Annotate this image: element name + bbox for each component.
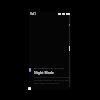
staticText: with fewer distractions. bbox=[34, 81, 61, 84]
staticText: A quiet dark theme for evening bbox=[34, 75, 69, 78]
staticText: reading sessions and focus work bbox=[34, 78, 71, 81]
staticText: Night Mode bbox=[34, 70, 54, 75]
staticText: Recommended for you today bbox=[34, 67, 64, 70]
staticText: 9:41 bbox=[30, 12, 36, 15]
